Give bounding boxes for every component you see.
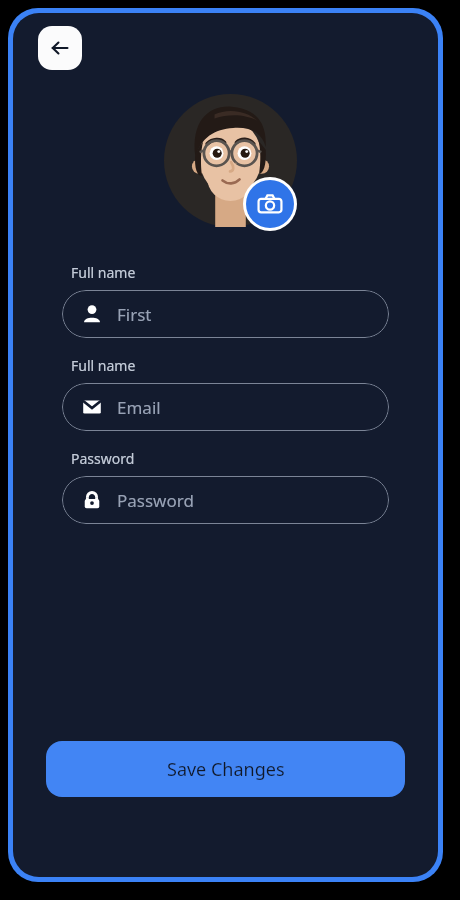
button[interactable]: Password: [62, 476, 389, 524]
staticText: Full name: [71, 263, 136, 282]
staticText: First: [117, 303, 152, 326]
button[interactable]: Change photo: [246, 180, 294, 228]
button[interactable]: Back: [38, 26, 82, 70]
staticText: Save Changes: [167, 757, 285, 782]
staticText: Password: [71, 449, 135, 468]
staticText: Full name: [71, 356, 136, 375]
button[interactable]: First: [62, 290, 389, 338]
staticText: Password: [117, 489, 194, 512]
button[interactable]: Email: [62, 383, 389, 431]
staticText: Email: [117, 396, 161, 419]
button[interactable]: Save Changes: [46, 741, 405, 797]
